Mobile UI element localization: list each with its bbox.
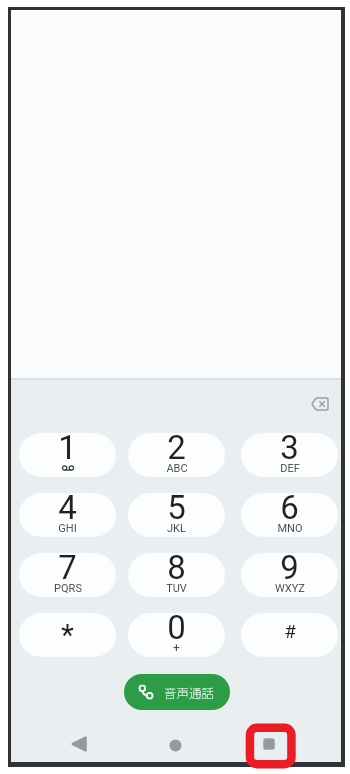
staticText: 3 <box>280 433 299 467</box>
staticText: 2 <box>167 433 186 467</box>
staticText: MNO <box>277 522 303 535</box>
button[interactable]: 5 <box>128 493 225 537</box>
button[interactable]: 6 <box>241 493 338 537</box>
staticText: WXYZ <box>275 582 305 595</box>
button[interactable]: 8 <box>128 553 225 597</box>
staticText: * <box>61 617 74 652</box>
staticText: 6 <box>280 493 299 527</box>
staticText: TUV <box>166 582 187 595</box>
staticText: 4 <box>58 493 77 527</box>
staticText: PQRS <box>54 582 82 595</box>
button[interactable] <box>161 731 189 759</box>
button[interactable] <box>65 730 93 758</box>
staticText: 1 <box>58 433 77 467</box>
staticText: 音声通話 <box>164 683 215 701</box>
button[interactable]: 3 <box>241 433 338 477</box>
button[interactable]: * <box>19 613 116 657</box>
button[interactable] <box>255 730 283 758</box>
staticText: # <box>284 620 296 642</box>
staticText: ABC <box>166 462 188 475</box>
button[interactable]: 0 <box>128 613 225 657</box>
staticText: GHI <box>58 522 77 535</box>
staticText: 9 <box>280 553 299 587</box>
button[interactable]: 4 <box>19 493 116 537</box>
button[interactable]: 7 <box>19 553 116 597</box>
button[interactable]: 9 <box>241 553 338 597</box>
staticText: 5 <box>167 493 186 527</box>
button[interactable] <box>307 392 333 415</box>
staticText: JKL <box>167 522 186 535</box>
button[interactable]: 音声通話 <box>124 674 230 710</box>
staticText: 8 <box>167 553 186 587</box>
staticText: DEF <box>280 462 300 475</box>
button[interactable]: 2 <box>128 433 225 477</box>
button[interactable]: 1 <box>19 433 116 477</box>
staticText: 7 <box>58 553 77 587</box>
staticText: + <box>173 641 180 655</box>
staticText: 0 <box>167 613 186 647</box>
button[interactable]: # <box>241 613 338 657</box>
